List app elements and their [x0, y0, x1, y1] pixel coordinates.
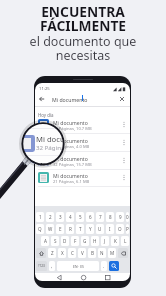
staticText: L [124, 238, 127, 244]
button[interactable]: I [106, 224, 114, 234]
button[interactable]: K [111, 236, 119, 246]
staticText: Mi documento [53, 120, 88, 127]
staticText: 9 [119, 214, 122, 220]
button[interactable]: R [66, 224, 74, 234]
staticText: M [110, 250, 115, 256]
button[interactable]: H [91, 236, 99, 246]
staticText: R [69, 226, 72, 232]
staticText: J [104, 238, 106, 244]
button[interactable]: 5 [76, 212, 84, 222]
staticText: Mi documento [53, 156, 88, 163]
staticText: 21 Páginas, 6.1 MB [53, 179, 90, 185]
staticText: 32 Páginas, 15.7 MB [36, 143, 65, 151]
staticText: F [74, 238, 77, 244]
button[interactable]: D [61, 236, 69, 246]
staticText: I [109, 226, 111, 232]
staticText: X [61, 250, 64, 256]
button[interactable]: A [41, 236, 49, 246]
staticText: N [100, 250, 104, 256]
button[interactable]: T [76, 224, 84, 234]
button[interactable]: P [126, 224, 129, 234]
button[interactable]: 2 [46, 212, 54, 222]
button[interactable]: S [51, 236, 59, 246]
button[interactable]: V [78, 248, 86, 258]
button[interactable]: Z [48, 248, 56, 258]
staticText: . [103, 263, 105, 269]
staticText: EN · ES [73, 264, 84, 269]
button[interactable]: , [49, 261, 55, 271]
staticText: 8 [109, 214, 112, 220]
staticText: 5 [79, 214, 82, 220]
button[interactable]: 9 [116, 212, 124, 222]
staticText: D [63, 238, 67, 244]
button[interactable]: EN · ES [57, 261, 99, 271]
button[interactable]: . [101, 261, 107, 271]
staticText: V [81, 250, 84, 256]
button[interactable]: E [56, 224, 64, 234]
button[interactable]: ?123 [36, 261, 47, 271]
button[interactable]: U [96, 224, 104, 234]
staticText: ?123 [38, 264, 45, 268]
button[interactable]: N [98, 248, 106, 258]
button[interactable]: More options [120, 173, 128, 181]
button[interactable]: Mi documento [35, 134, 130, 152]
button[interactable]: Search [109, 261, 119, 271]
button[interactable]: Backspace [118, 248, 128, 258]
staticText: O [118, 226, 122, 232]
staticText: 32 Páginas, 15.7 MB [53, 162, 92, 168]
staticText: 12 Páginas, 4.0 MB [36, 123, 65, 124]
staticText: 11:25 [39, 86, 50, 92]
staticText: G [83, 238, 87, 244]
staticText: 4 [69, 214, 72, 220]
button[interactable]: Mi documento [35, 169, 130, 187]
staticText: Hoy día [38, 112, 54, 118]
button[interactable]: X [58, 248, 66, 258]
button[interactable]: M [108, 248, 116, 258]
button[interactable]: 7 [96, 212, 104, 222]
staticText: Mi documento [53, 173, 88, 180]
staticText: el documento que necesitas [0, 33, 166, 64]
button[interactable]: L [121, 236, 129, 246]
staticText: 3 [59, 214, 62, 220]
button[interactable]: O [116, 224, 124, 234]
button[interactable]: B [88, 248, 96, 258]
button[interactable]: More options [120, 138, 128, 146]
button[interactable]: W [46, 224, 54, 234]
staticText: S [54, 238, 57, 244]
button[interactable]: More options [120, 120, 128, 128]
staticText: K [114, 238, 117, 244]
button[interactable]: Mi documento [35, 152, 130, 170]
staticText: 7 [99, 214, 102, 220]
button[interactable]: 8 [106, 212, 114, 222]
staticText: , [51, 263, 53, 269]
staticText: U [98, 226, 102, 232]
staticText: ENCUENTRA FÁCILMENTE [0, 2, 166, 35]
button[interactable]: 0 [126, 212, 129, 222]
staticText: T [79, 226, 82, 232]
staticText: A [44, 238, 47, 244]
button[interactable]: 1 [36, 212, 44, 222]
button[interactable]: Q [36, 224, 44, 234]
button[interactable]: Mi documento [35, 116, 130, 134]
button[interactable]: 6 [86, 212, 94, 222]
button[interactable]: 4 [66, 212, 74, 222]
button[interactable]: F [71, 236, 79, 246]
staticText: Y [89, 226, 92, 232]
button[interactable]: Y [86, 224, 94, 234]
staticText: 6 [89, 214, 92, 220]
button[interactable]: J [101, 236, 109, 246]
staticText: Mi documento [53, 138, 88, 145]
button[interactable]: Shift [36, 248, 46, 258]
button[interactable]: More options [120, 156, 128, 164]
staticText: H [93, 238, 97, 244]
staticText: 0 [126, 214, 129, 220]
button[interactable]: Clear search [118, 95, 126, 103]
staticText: P [126, 226, 129, 232]
button[interactable]: 3 [56, 212, 64, 222]
staticText: 38 Páginas, 10.7 MB [53, 126, 92, 132]
button[interactable]: Back [37, 94, 47, 104]
staticText: Mi documento [36, 160, 65, 166]
staticText: E [59, 226, 62, 232]
button[interactable]: G [81, 236, 89, 246]
button[interactable]: C [68, 248, 76, 258]
